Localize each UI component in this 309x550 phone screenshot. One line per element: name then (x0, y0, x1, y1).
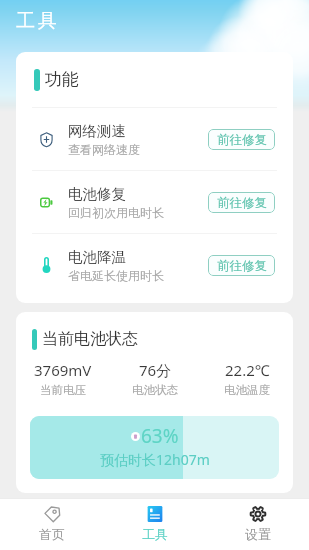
staticText: 回归初次用电时长 (68, 205, 164, 220)
button[interactable]: 设置 (206, 498, 309, 550)
staticText: 省电延长使用时长 (68, 268, 164, 283)
other: 工具 (147, 506, 163, 522)
staticText: 首页 (39, 526, 65, 542)
button[interactable]: 前往修复 (208, 255, 275, 276)
staticText: 设置 (245, 526, 271, 542)
button[interactable]: 工具 (103, 498, 206, 550)
staticText: 当前电池状态 (42, 329, 138, 349)
staticText: 电池降温 (68, 248, 126, 266)
staticText: 功能 (45, 69, 79, 90)
staticText: 工具 (15, 9, 58, 33)
button[interactable]: 电池降温 (16, 234, 293, 296)
staticText: 工具 (142, 526, 168, 542)
staticText: 电池修复 (68, 185, 126, 203)
staticText: 电池温度 (224, 383, 270, 397)
button[interactable]: 首页 (0, 498, 103, 550)
staticText: 63% (141, 423, 179, 449)
staticText: 前往修复 (217, 258, 267, 274)
other: 首页 (44, 506, 60, 522)
staticText: 76分 (139, 360, 172, 380)
staticText: 预估时长12h07m (100, 450, 210, 469)
other: 设置 (250, 506, 266, 522)
button[interactable]: 前往修复 (208, 129, 275, 150)
button[interactable]: 电池修复 (16, 171, 293, 233)
staticText: 网络测速 (68, 122, 126, 140)
staticText: 查看网络速度 (68, 142, 140, 157)
staticText: 前往修复 (217, 195, 267, 211)
button[interactable]: 前往修复 (208, 192, 275, 213)
staticText: 前往修复 (217, 132, 267, 148)
staticText: 3769mV (34, 360, 92, 380)
staticText: 电池状态 (132, 383, 178, 397)
button[interactable]: 网络测速 (16, 108, 293, 170)
staticText: 当前电压 (40, 383, 86, 397)
staticText: 22.2℃ (225, 360, 270, 380)
